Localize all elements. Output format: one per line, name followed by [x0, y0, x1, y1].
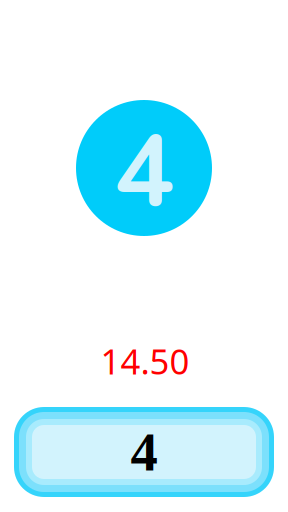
staticText: 4: [130, 422, 157, 482]
button[interactable]: 4: [14, 407, 274, 497]
staticText: 4: [114, 104, 174, 240]
staticText: 14.50: [100, 338, 189, 384]
